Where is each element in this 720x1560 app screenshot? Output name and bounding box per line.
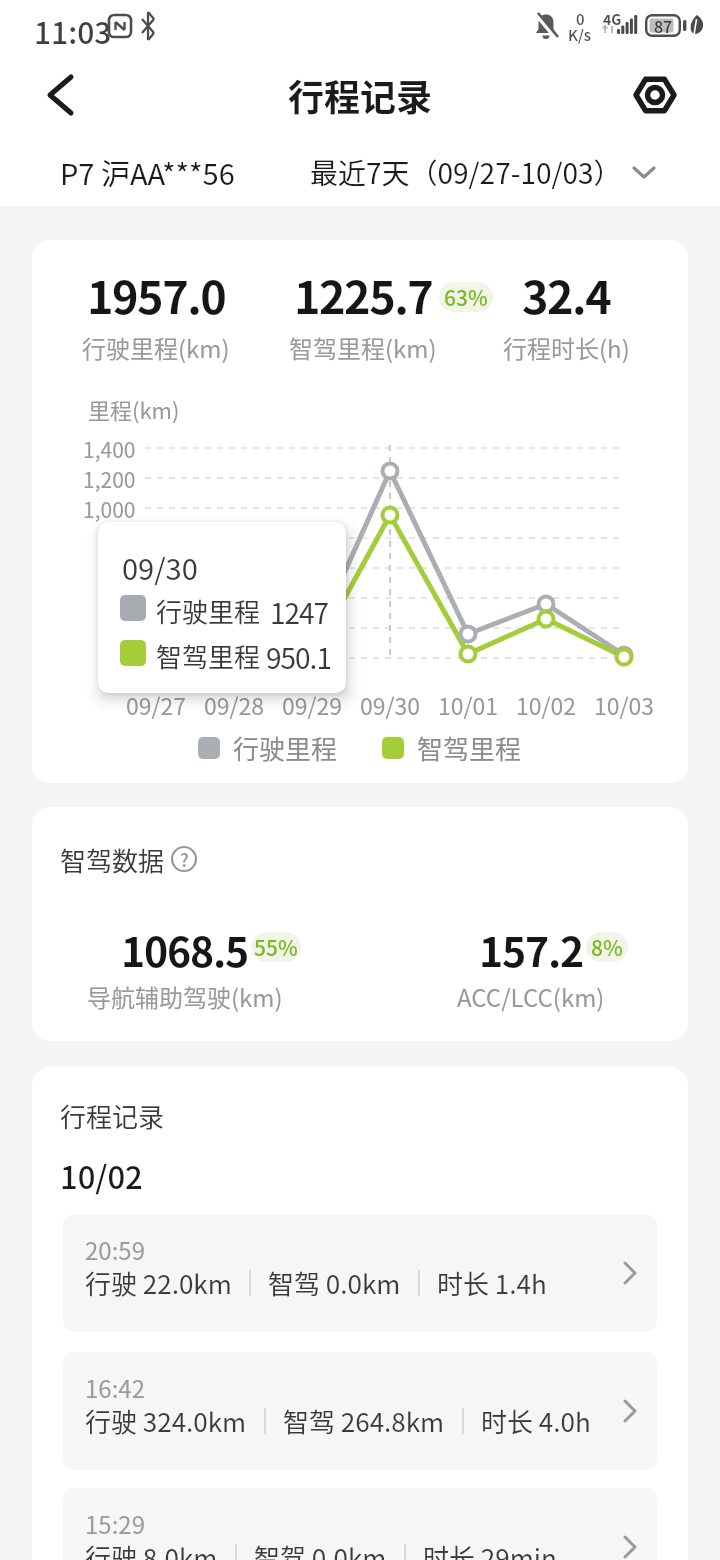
button[interactable]: 20:59 [63,1214,657,1332]
staticText: 1068.5 [121,919,249,978]
staticText: 16:42 [85,1370,145,1405]
staticText: 行驶里程(km) [82,330,230,365]
staticText: 10/02 [60,1153,143,1198]
staticText: 行程记录 [288,69,433,121]
staticText: 1,200 [83,464,136,494]
staticText: 63% [444,282,488,312]
button[interactable]: 15:29 [63,1488,657,1560]
staticText: 11:03 [34,9,112,52]
staticText: 950.1 [266,637,331,678]
staticText: 15:29 [85,1506,145,1541]
staticText: 400 [101,584,136,614]
staticText: 智驾里程 [156,637,261,675]
staticText: 10/01 [438,688,499,721]
staticText: 87 [654,14,673,37]
button[interactable] [620,60,690,130]
staticText: 10/02 [516,688,577,721]
staticText: 1225.7 [294,262,433,327]
staticText: 行驶 8.0km [85,1538,218,1560]
staticText: 智驾里程(km) [289,330,437,365]
staticText: 0 [124,644,136,674]
staticText: K/s [568,24,592,46]
staticText: 09/30 [360,688,421,721]
staticText: P7 沪AA***56 [60,151,235,193]
staticText: 最近7天（09/27-10/03） [310,152,622,193]
staticText: 行驶里程 [156,592,261,630]
staticText: 时长 1.4h [437,1264,547,1302]
staticText: 行驶里程 [233,729,338,767]
staticText: 0 [576,8,585,30]
staticText: 行驶 22.0km [85,1264,232,1302]
staticText: 200 [101,614,136,644]
staticText: 10/03 [594,688,655,721]
staticText: 时长 4.0h [481,1402,591,1440]
staticText: 09/29 [282,688,343,721]
staticText: ACC/LCC(km) [457,979,605,1014]
staticText: 里程(km) [88,393,180,425]
staticText: 时长 29min [423,1538,557,1560]
staticText: 智驾 264.8km [283,1402,445,1440]
staticText: 09/30 [122,546,198,588]
staticText: 1,000 [83,494,136,524]
staticText: 1,400 [83,434,136,464]
staticText: 09/28 [204,688,265,721]
staticText: 600 [101,554,136,584]
staticText: 行驶 324.0km [85,1402,247,1440]
button[interactable]: P7 沪AA***56 [60,146,235,198]
staticText: 智驾里程 [417,729,522,767]
staticText: 8% [591,932,623,962]
staticText: 32.4 [522,262,611,327]
button[interactable]: 最近7天（09/27-10/03） [310,146,656,198]
staticText: 行程时长(h) [503,330,630,365]
staticText: 157.2 [479,919,584,978]
staticText: 4G [603,9,622,29]
staticText: 1247 [270,592,329,633]
staticText: 09/27 [126,688,187,721]
staticText: 55% [254,932,298,962]
staticText: 智驾 0.0km [254,1538,387,1560]
button[interactable] [28,63,92,127]
staticText: 1957.0 [87,262,226,327]
staticText: 20:59 [85,1232,145,1267]
staticText: 行程记录 [60,1097,165,1135]
staticText: 导航辅助驾驶(km) [87,979,283,1014]
staticText: 智驾 0.0km [268,1264,401,1302]
button[interactable]: 16:42 [63,1352,657,1470]
staticText: 智驾数据 [60,841,165,879]
staticText: ? [180,846,189,872]
